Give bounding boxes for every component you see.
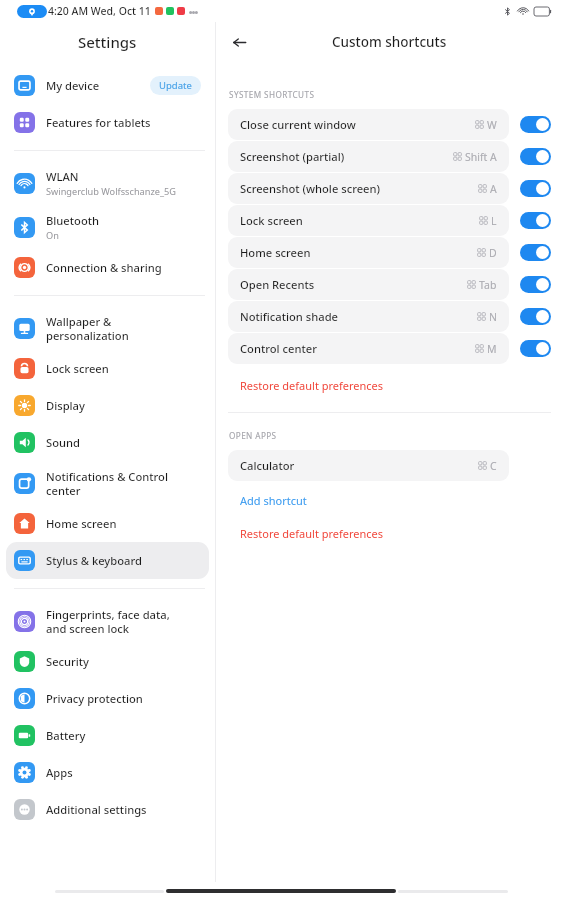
staticText: W <box>487 118 497 132</box>
button[interactable]: Fingerprints, face data, and screen lock <box>6 599 209 643</box>
staticText: Open Recents <box>240 277 315 292</box>
button[interactable]: Sound <box>6 424 209 461</box>
staticText: Swingerclub Wolfsschanze_5G <box>46 185 176 198</box>
button[interactable]: Back <box>224 27 254 57</box>
staticText: L <box>491 214 497 228</box>
staticText: D <box>489 246 497 260</box>
staticText: My device <box>46 78 100 93</box>
button[interactable]: Notification shade <box>228 301 509 332</box>
staticText: Tab <box>479 278 497 292</box>
staticText: Features for tablets <box>46 115 151 130</box>
staticText: Control center <box>240 341 317 356</box>
staticText: Display <box>46 398 85 413</box>
staticText: N <box>489 310 497 324</box>
staticText: A <box>490 182 497 196</box>
button[interactable]: Toggle Home screen <box>520 244 551 261</box>
staticText: Update <box>159 79 192 92</box>
button[interactable]: Stylus & keyboard <box>6 542 209 579</box>
button[interactable]: Additional settings <box>6 791 209 828</box>
staticText: Lock screen <box>46 361 109 376</box>
button[interactable]: Privacy protection <box>6 680 209 717</box>
button[interactable]: WLAN <box>6 161 209 205</box>
staticText: Notification shade <box>240 309 338 324</box>
staticText: Sound <box>46 435 80 450</box>
staticText: 4:20 AM Wed, Oct 11 <box>48 4 151 18</box>
staticText: Home screen <box>240 245 311 260</box>
button[interactable]: Toggle Notification shade <box>520 308 551 325</box>
button[interactable]: Control center <box>228 333 509 364</box>
staticText: Wallpaper & personalization <box>46 314 129 343</box>
button[interactable]: Display <box>6 387 209 424</box>
button[interactable]: Home screen <box>228 237 509 268</box>
staticText: Fingerprints, face data, and screen lock <box>46 607 170 636</box>
button[interactable]: Screenshot (whole screen) <box>228 173 509 204</box>
button[interactable]: Wallpaper & personalization <box>6 306 209 350</box>
staticText: Additional settings <box>46 802 147 817</box>
staticText: Screenshot (partial) <box>240 149 345 164</box>
button[interactable]: Restore default preferences <box>239 524 385 543</box>
button[interactable]: Calculator <box>228 450 509 481</box>
staticText: Settings <box>78 32 137 52</box>
staticText: Close current window <box>240 117 356 132</box>
button[interactable]: My device <box>6 67 209 104</box>
button[interactable]: Open Recents <box>228 269 509 300</box>
staticText: Battery <box>46 728 86 743</box>
button[interactable]: Lock screen <box>228 205 509 236</box>
button[interactable]: Lock screen <box>6 350 209 387</box>
button[interactable]: Bluetooth <box>6 205 209 249</box>
staticText: C <box>490 459 497 473</box>
button[interactable]: Notifications & Control center <box>6 461 209 505</box>
button[interactable]: Close current window <box>228 109 509 140</box>
staticText: Notifications & Control center <box>46 469 168 498</box>
staticText: Lock screen <box>240 213 303 228</box>
button[interactable]: Toggle Close current window <box>520 116 551 133</box>
button[interactable]: Toggle Screenshot (partial) <box>520 148 551 165</box>
button[interactable]: Security <box>6 643 209 680</box>
staticText: Bluetooth <box>46 213 100 228</box>
button[interactable]: Screenshot (partial) <box>228 141 509 172</box>
staticText: OPEN APPS <box>229 430 277 441</box>
staticText: Screenshot (whole screen) <box>240 181 381 196</box>
button[interactable]: Features for tablets <box>6 104 209 141</box>
staticText: WLAN <box>46 169 79 184</box>
staticText: Home screen <box>46 516 117 531</box>
staticText: Calculator <box>240 458 295 473</box>
button[interactable]: Restore default preferences <box>239 376 385 395</box>
button[interactable]: Toggle Control center <box>520 340 551 357</box>
button[interactable]: Toggle Open Recents <box>520 276 551 293</box>
staticText: M <box>487 342 497 356</box>
button[interactable]: Battery <box>6 717 209 754</box>
staticText: Custom shortcuts <box>332 33 447 51</box>
staticText: Stylus & keyboard <box>46 553 142 568</box>
staticText: On <box>46 229 59 242</box>
button[interactable]: Toggle Screenshot (whole screen) <box>520 180 551 197</box>
staticText: Restore default preferences <box>240 378 384 393</box>
staticText: Security <box>46 654 90 669</box>
staticText: Restore default preferences <box>240 526 384 541</box>
staticText: SYSTEM SHORTCUTS <box>229 89 315 100</box>
button[interactable]: Home screen <box>6 505 209 542</box>
button[interactable]: Add shortcut <box>239 491 308 510</box>
button[interactable]: Apps <box>6 754 209 791</box>
staticText: Connection & sharing <box>46 260 162 275</box>
staticText: Apps <box>46 765 73 780</box>
staticText: Shift A <box>465 150 497 164</box>
staticText: Add shortcut <box>240 493 307 508</box>
button[interactable]: Toggle Lock screen <box>520 212 551 229</box>
button[interactable]: Connection & sharing <box>6 249 209 286</box>
staticText: Privacy protection <box>46 691 143 706</box>
